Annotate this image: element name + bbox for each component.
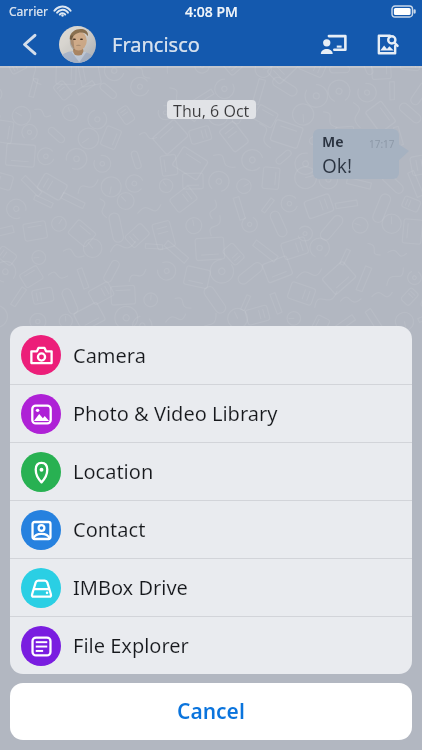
button[interactable]: Back (0, 22, 52, 66)
staticText: Photo & Video Library (73, 400, 278, 427)
button[interactable]: Photo & Video Library (10, 385, 412, 442)
button[interactable]: Camera (10, 326, 412, 384)
button[interactable]: Contact (10, 501, 412, 558)
staticText: File Explorer (73, 632, 189, 659)
staticText: 4:08 PM (185, 2, 238, 21)
button[interactable]: Francisco (59, 26, 200, 63)
staticText: Location (73, 458, 154, 485)
staticText: Francisco (112, 31, 200, 58)
button[interactable]: File Explorer (10, 617, 412, 674)
staticText: Carrier (9, 3, 49, 19)
staticText: Cancel (177, 697, 245, 726)
staticText: Camera (73, 342, 146, 369)
button[interactable]: Cancel (10, 683, 412, 740)
staticText: Me (322, 132, 344, 151)
staticText: Contact (73, 516, 146, 543)
staticText: 17:17 (369, 137, 395, 151)
button[interactable]: Screen share (312, 23, 354, 65)
button[interactable]: IMBox Drive (10, 559, 412, 616)
button[interactable]: Search images (366, 23, 408, 65)
button[interactable]: Location (10, 443, 412, 500)
staticText: IMBox Drive (73, 574, 188, 601)
staticText: Thu, 6 Oct (173, 100, 250, 119)
staticText: Ok! (322, 153, 353, 179)
